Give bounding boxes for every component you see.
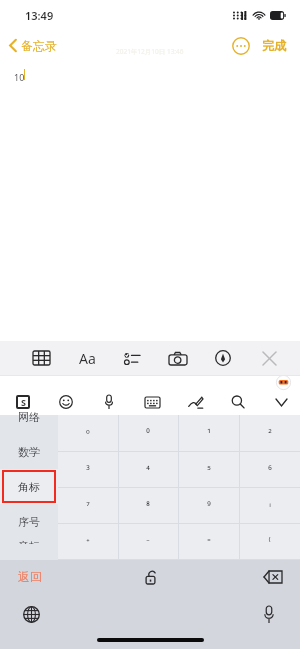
staticText: ⁵ xyxy=(207,463,211,477)
button[interactable]: ⁻ xyxy=(118,524,178,559)
button[interactable]: ⁽ xyxy=(239,524,300,559)
staticText: ⁷ xyxy=(86,499,90,513)
button[interactable]: Text format xyxy=(74,345,100,371)
button[interactable]: Markup xyxy=(210,345,236,371)
staticText: ³ xyxy=(86,463,90,477)
button[interactable]: Close keyboard xyxy=(256,345,282,371)
button[interactable]: Insert table xyxy=(28,345,54,371)
staticText: 角标 xyxy=(18,480,40,494)
staticText: ⁹ xyxy=(207,499,211,513)
button[interactable]: 数学 xyxy=(0,434,58,469)
staticText: 数学 xyxy=(18,445,40,459)
button[interactable]: 音标 xyxy=(0,539,58,544)
staticText: 序号 xyxy=(18,515,40,529)
button[interactable]: Sogou input xyxy=(10,389,36,415)
button[interactable]: ⁸ xyxy=(118,488,178,523)
staticText: Aa xyxy=(79,349,96,368)
button[interactable]: ⁷ xyxy=(58,488,118,523)
button[interactable]: 返回 xyxy=(14,565,46,588)
button[interactable]: ² xyxy=(239,415,300,451)
button[interactable]: ⁶ xyxy=(239,452,300,487)
staticText: ⁻ xyxy=(146,535,150,549)
button[interactable]: ⁴ xyxy=(118,452,178,487)
button[interactable]: Switch language xyxy=(18,601,44,627)
staticText: ⁰ xyxy=(146,426,150,440)
button[interactable]: 网络 xyxy=(0,399,58,434)
staticText: S xyxy=(21,396,26,408)
staticText: 完成 xyxy=(262,38,286,53)
staticText: 音标 xyxy=(18,539,40,544)
staticText: ⁱ xyxy=(269,499,271,513)
button[interactable]: Voice input xyxy=(96,389,122,415)
button[interactable]: ⁵ xyxy=(178,452,239,487)
button[interactable]: ³ xyxy=(58,452,118,487)
button[interactable]: Search xyxy=(225,389,251,415)
button[interactable]: Checklist xyxy=(119,345,145,371)
button[interactable]: 角标 xyxy=(0,469,58,504)
staticText: ⁽ xyxy=(268,535,271,549)
staticText: ⁼ xyxy=(207,535,211,549)
staticText: 13:49 xyxy=(25,8,54,23)
staticText: 10 xyxy=(14,71,25,83)
staticText: 2021年12月10日 13:46 xyxy=(116,47,184,56)
staticText: ⁴ xyxy=(146,463,150,477)
staticText: ² xyxy=(268,426,272,440)
button[interactable]: 序号 xyxy=(0,504,58,539)
button[interactable]: ⁼ xyxy=(178,524,239,559)
button[interactable]: Assistant xyxy=(276,375,291,390)
button[interactable]: Voice input xyxy=(256,601,282,627)
button[interactable]: ⁹ xyxy=(178,488,239,523)
button[interactable]: Hide panel xyxy=(268,389,294,415)
button[interactable]: Lock panel xyxy=(138,565,162,589)
button[interactable]: ⁱ xyxy=(239,488,300,523)
staticText: ⁶ xyxy=(268,463,272,477)
button[interactable]: Emoji xyxy=(53,389,79,415)
button[interactable]: ⁺ xyxy=(58,524,118,559)
button[interactable]: ⁰ xyxy=(118,415,178,451)
staticText: ¹ xyxy=(207,426,211,440)
button[interactable]: Camera xyxy=(165,345,191,371)
staticText: 备忘录 xyxy=(21,38,57,53)
staticText: º xyxy=(86,426,90,440)
staticText: ⁸ xyxy=(146,499,150,513)
staticText: ⁺ xyxy=(86,535,90,549)
button[interactable]: 完成 xyxy=(260,34,288,57)
staticText: 网络 xyxy=(18,410,40,424)
button[interactable]: Handwriting xyxy=(182,389,208,415)
button[interactable]: ¹ xyxy=(178,415,239,451)
button[interactable]: 备忘录 xyxy=(0,34,65,57)
button[interactable]: More options xyxy=(232,37,250,55)
button[interactable]: Delete xyxy=(260,564,286,590)
button[interactable]: º xyxy=(58,415,118,451)
button[interactable]: Keyboard layout xyxy=(139,389,165,415)
staticText: 返回 xyxy=(18,569,42,584)
